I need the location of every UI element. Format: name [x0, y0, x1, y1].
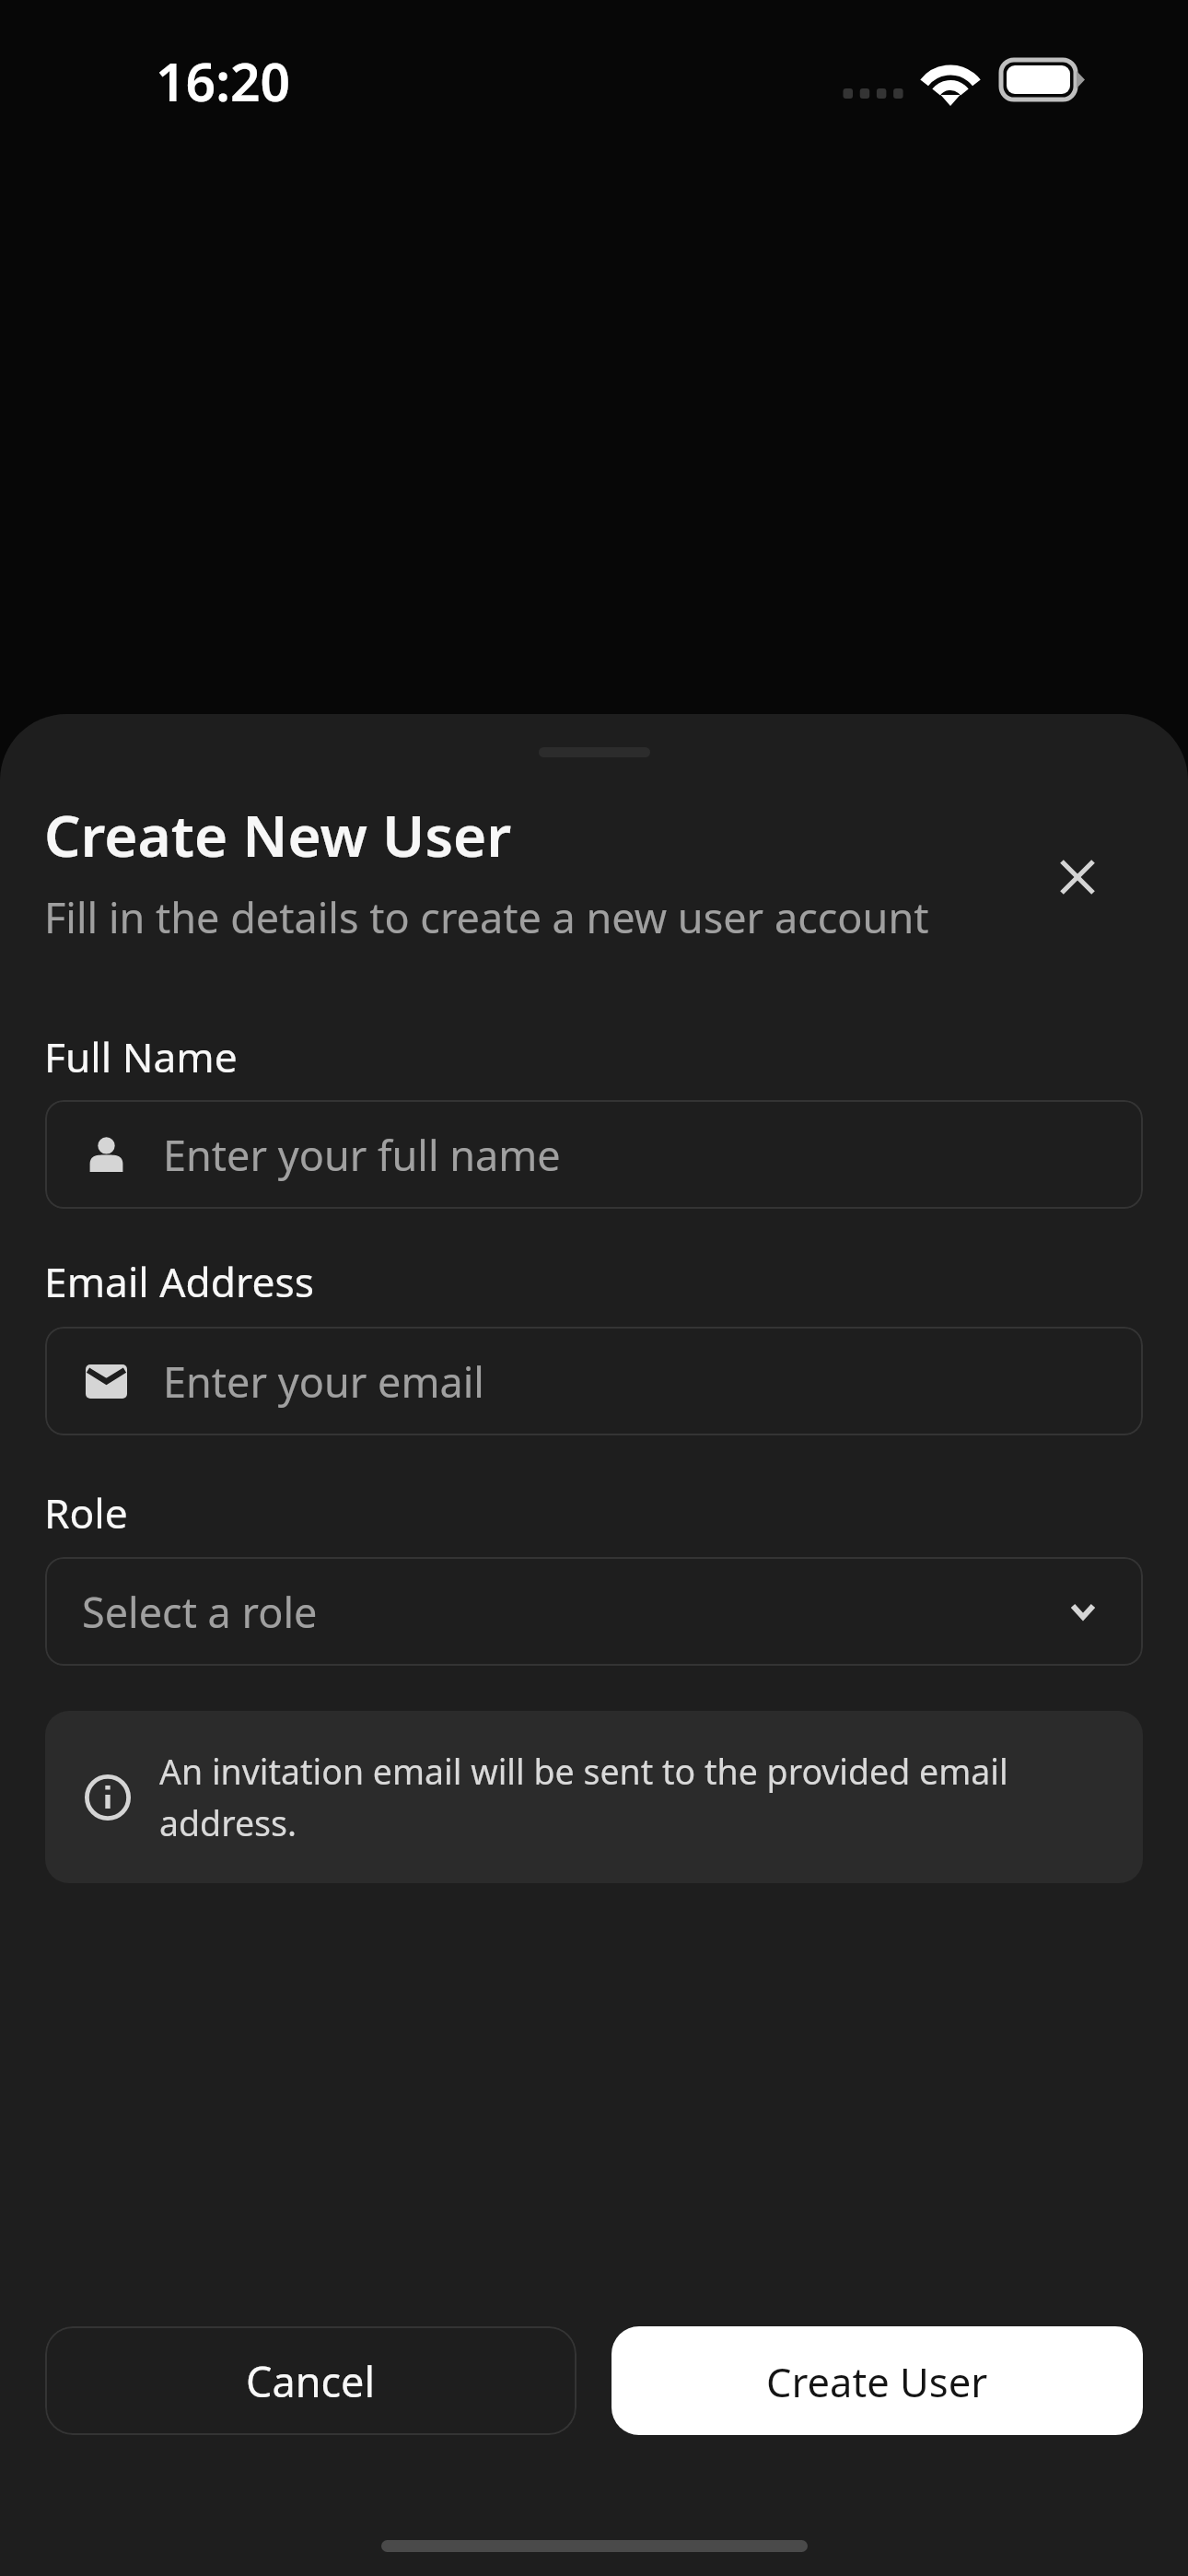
staticText: Fill in the details to create a new user…: [44, 889, 929, 945]
staticText: Enter your email: [163, 1353, 484, 1410]
button[interactable]: Create User: [611, 2326, 1143, 2435]
staticText: Create User: [766, 2354, 988, 2408]
button[interactable]: Enter your full name: [45, 1100, 1143, 1209]
button[interactable]: Cancel: [45, 2326, 577, 2435]
staticText: Cancel: [246, 2353, 376, 2409]
staticText: 16:20: [156, 45, 291, 117]
staticText: Create New User: [44, 796, 512, 873]
staticText: Full Name: [44, 1029, 238, 1084]
button[interactable]: Close: [1031, 831, 1124, 923]
staticText: Select a role: [82, 1584, 1070, 1640]
staticText: Enter your full name: [163, 1127, 561, 1183]
staticText: Role: [44, 1485, 128, 1540]
staticText: Email Address: [44, 1254, 314, 1309]
button[interactable]: Select a role: [45, 1557, 1143, 1666]
button[interactable]: Enter your email: [45, 1327, 1143, 1435]
staticText: An invitation email will be sent to the …: [159, 1748, 1102, 1846]
